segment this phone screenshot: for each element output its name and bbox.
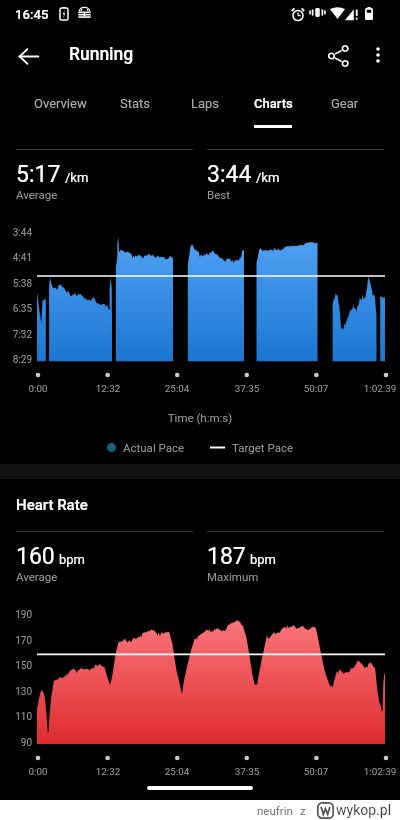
staticText: 8:29 (0, 354, 32, 366)
staticText: Running (69, 44, 134, 65)
staticText: Charts (254, 96, 293, 111)
staticText: Actual Pace (123, 441, 185, 454)
staticText: 90 (0, 737, 32, 749)
staticText: /km (65, 170, 89, 185)
button[interactable]: Share (316, 33, 362, 79)
staticText: Average (16, 188, 58, 201)
staticText: 25:04 (147, 766, 207, 777)
staticText: 50:07 (286, 766, 346, 777)
staticText: 12:32 (78, 383, 138, 394)
button[interactable]: Overview (24, 90, 96, 128)
staticText: /km (256, 170, 280, 185)
staticText: 3:44 (0, 227, 32, 239)
staticText: Average (16, 570, 58, 583)
staticText: 0:00 (8, 766, 68, 777)
button[interactable]: Back (5, 33, 51, 79)
staticText: 160 (16, 543, 55, 570)
staticText: Gear (331, 96, 359, 111)
staticText: 190 (0, 609, 32, 621)
button[interactable]: Laps (174, 90, 236, 128)
staticText: 1:02:39 (350, 383, 400, 394)
staticText: 6:35 (0, 303, 32, 315)
staticText: Target Pace (232, 441, 294, 454)
staticText: wykop.pl (336, 802, 392, 818)
button[interactable]: More options (356, 33, 400, 77)
staticText: 170 (0, 635, 32, 647)
staticText: 150 (0, 660, 32, 672)
staticText: Time (h:m:s) (0, 411, 400, 424)
staticText: 4:41 (0, 252, 32, 264)
staticText: Stats (120, 96, 151, 111)
staticText: 7:32 (0, 329, 32, 341)
staticText: Laps (191, 96, 220, 111)
staticText: 37:35 (217, 766, 277, 777)
staticText: neufrin (257, 804, 293, 817)
staticText: 50:07 (286, 383, 346, 394)
staticText: 187 (207, 543, 246, 570)
button[interactable]: Charts (239, 90, 307, 128)
staticText: 37:35 (217, 383, 277, 394)
staticText: 5:38 (0, 278, 32, 290)
staticText: Maximum (207, 570, 259, 583)
staticText: 5:17 (16, 161, 61, 188)
staticText: bpm (59, 552, 85, 567)
staticText: 3:44 (207, 161, 252, 188)
staticText: 12:32 (78, 766, 138, 777)
staticText: 130 (0, 686, 32, 698)
staticText: z (300, 804, 306, 817)
staticText: 110 (0, 711, 32, 723)
staticText: 16:45 (15, 7, 49, 22)
staticText: Overview (34, 96, 87, 111)
staticText: bpm (250, 552, 276, 567)
button[interactable]: Stats (104, 90, 166, 128)
staticText: Heart Rate (16, 496, 88, 514)
staticText: Best (207, 188, 230, 201)
staticText: 25:04 (147, 383, 207, 394)
staticText: 0:00 (8, 383, 68, 394)
button[interactable]: Gear (314, 90, 376, 128)
staticText: 1:02:39 (350, 766, 400, 777)
